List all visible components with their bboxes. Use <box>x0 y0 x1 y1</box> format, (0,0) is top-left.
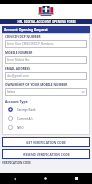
staticText: abc@gmail.com <box>7 74 29 78</box>
staticText: VERIFICATION CODE <box>2 161 31 165</box>
staticText: EMAIL ADDRESS <box>5 67 31 71</box>
staticText: Account Opening Request <box>4 27 48 32</box>
button[interactable]: Recent apps <box>61 173 92 184</box>
staticText: Select <box>7 90 16 94</box>
button[interactable]: abc@gmail.com <box>5 72 87 80</box>
staticText: Savings Bank <box>17 108 36 112</box>
staticText: GET VERIFICATION CODE <box>26 140 66 144</box>
button[interactable]: Savings Bank <box>5 105 87 114</box>
staticText: HFL DIGITAL ACCOUNT OPENING FORM <box>17 20 76 24</box>
staticText: Enter Mobile No. <box>7 58 30 62</box>
button[interactable]: Current A/c <box>5 114 87 123</box>
staticText: Current A/c <box>17 117 34 121</box>
staticText: OWNERSHIP OF YOUR MOBILE NUMBER <box>5 83 68 87</box>
button[interactable]: NRO <box>5 123 87 132</box>
staticText: Enter Your CRN/CIF/DCP Numbers <box>7 42 54 46</box>
button[interactable]: Home <box>30 173 61 184</box>
button[interactable]: Enter Mobile No. <box>5 56 87 64</box>
staticText: RESEND VERIFICATION CODE <box>23 152 70 156</box>
staticText: CRN/CIF/DCP NUMBER <box>5 35 41 39</box>
button[interactable]: RESEND VERIFICATION CODE <box>2 149 90 159</box>
button[interactable]: GET VERIFICATION CODE <box>2 137 90 147</box>
button[interactable]: Back <box>0 173 30 184</box>
staticText: Account Type <box>5 99 28 104</box>
staticText: MOBILE NUMBER <box>5 51 33 55</box>
button[interactable]: Enter Your CRN/CIF/DCP Numbers <box>5 40 87 48</box>
button[interactable]: Select <box>5 88 87 96</box>
staticText: NRO <box>17 126 24 130</box>
